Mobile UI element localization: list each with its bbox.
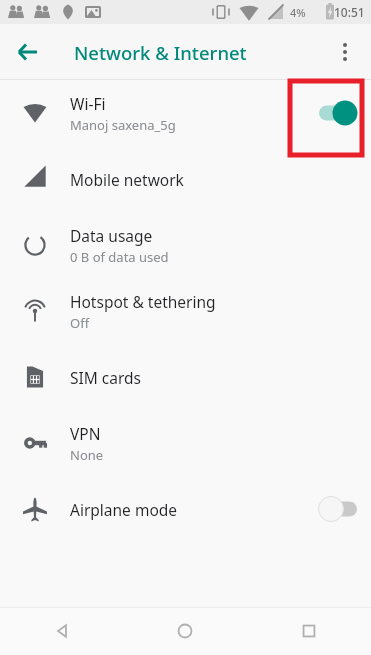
button[interactable]: Home: [123, 607, 247, 655]
button[interactable]: Recents: [247, 607, 371, 655]
button[interactable]: Back: [6, 30, 50, 74]
button[interactable]: Toggle on: [305, 80, 371, 146]
staticText: Network & Internet: [74, 40, 247, 65]
staticText: Hotspot & tethering: [70, 291, 216, 312]
staticText: Airplane mode: [70, 499, 178, 520]
staticText: Wi-Fi: [70, 93, 106, 114]
button[interactable]: More options: [325, 32, 365, 72]
button[interactable]: Airplane mode: [0, 476, 371, 542]
button[interactable]: VPN: [0, 410, 371, 476]
staticText: Manoj saxena_5g: [70, 116, 176, 134]
staticText: 0 B of data used: [70, 248, 169, 266]
staticText: Mobile network: [70, 169, 184, 190]
button[interactable]: Back: [0, 607, 123, 655]
button[interactable]: SIM cards: [0, 344, 371, 410]
button[interactable]: Hotspot & tethering: [0, 278, 371, 344]
button[interactable]: Wi-Fi: [0, 80, 371, 146]
staticText: Off: [70, 314, 90, 332]
staticText: 4%: [290, 5, 306, 20]
button[interactable]: Toggle off: [305, 476, 371, 542]
staticText: SIM cards: [70, 367, 142, 388]
staticText: Data usage: [70, 225, 153, 246]
button[interactable]: Data usage: [0, 212, 371, 278]
staticText: VPN: [70, 423, 101, 444]
staticText: None: [70, 446, 104, 464]
button[interactable]: Mobile network: [0, 146, 371, 212]
staticText: 10:51: [334, 4, 365, 20]
